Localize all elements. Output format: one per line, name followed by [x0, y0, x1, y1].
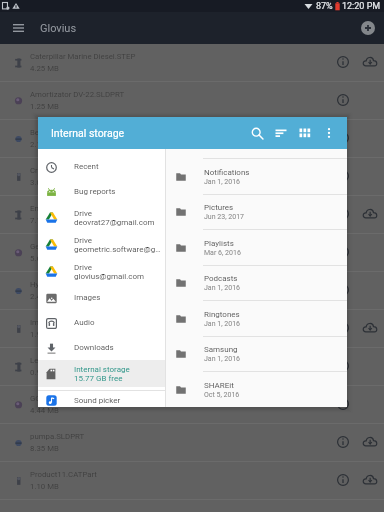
button[interactable]: Internal storage: [38, 360, 165, 387]
staticText: Bearing assembly.STEP: [30, 128, 112, 137]
staticText: Gearbox housing.prt: [30, 242, 101, 251]
button[interactable]: Sound picker: [38, 394, 165, 407]
staticText: Jan 1, 2016: [204, 284, 241, 292]
button[interactable]: Audio: [38, 310, 165, 335]
button[interactable]: File info: [331, 164, 355, 188]
staticText: 1.25 MB: [30, 102, 59, 111]
button[interactable]: Recent: [38, 154, 165, 179]
button[interactable]: File info: [331, 88, 355, 112]
button[interactable]: Pictures: [166, 195, 347, 229]
staticText: Glovius: [40, 22, 77, 35]
button[interactable]: More options: [317, 121, 341, 145]
button[interactable]: Amortizator DV-22.SLDPRT: [0, 82, 384, 119]
staticText: Pictures: [204, 203, 234, 212]
button[interactable]: Search: [245, 121, 269, 145]
button[interactable]: Images: [38, 285, 165, 310]
staticText: Podcasts: [204, 274, 238, 283]
staticText: Amortizator DV-22.SLDPRT: [30, 90, 125, 99]
button[interactable]: Playlists: [166, 230, 347, 265]
button[interactable]: Hydraulic pump.x_t: [0, 272, 384, 309]
staticText: geometric.software@gm...: [74, 245, 165, 254]
staticText: Lever arm.CATPart: [30, 356, 96, 365]
staticText: Audio: [74, 318, 95, 327]
staticText: 87%: [316, 1, 333, 12]
staticText: Product11.CATPart: [30, 470, 97, 479]
button[interactable]: Caterpillar Marine Diesel.STEP: [0, 44, 384, 81]
button[interactable]: File info: [331, 468, 355, 492]
button[interactable]: Notifications: [166, 159, 347, 194]
button[interactable]: Drive: [38, 231, 165, 258]
staticText: Drive: [74, 263, 92, 272]
button[interactable]: File info: [331, 392, 355, 416]
staticText: 12:20 PM: [342, 1, 381, 12]
staticText: 8.35 MB: [30, 444, 59, 453]
button[interactable]: File info: [331, 316, 355, 340]
button[interactable]: Add: [361, 21, 375, 35]
button[interactable]: Download: [358, 50, 382, 74]
staticText: 0.95 MB: [30, 368, 59, 377]
staticText: Caterpillar Marine Diesel.STEP: [30, 52, 136, 61]
staticText: 1.10 MB: [30, 482, 59, 491]
button[interactable]: Sort: [269, 121, 293, 145]
staticText: Jan 1, 2016: [204, 355, 241, 363]
button[interactable]: Download: [358, 316, 382, 340]
staticText: pumpa.SLDPRT: [30, 432, 85, 441]
staticText: GG1a.STEP: [30, 394, 70, 403]
button[interactable]: Downloads: [38, 335, 165, 360]
button[interactable]: Product11.CATPart: [0, 462, 384, 499]
staticText: 1.90 MB: [30, 330, 59, 339]
staticText: deovrat27@gmail.com: [74, 218, 155, 227]
staticText: Engine block.STEP: [30, 204, 95, 213]
button[interactable]: File info: [331, 430, 355, 454]
staticText: Jan 1, 2016: [204, 320, 241, 328]
staticText: Mar 6, 2016: [204, 249, 241, 257]
button[interactable]: pumpa.SLDPRT: [0, 424, 384, 461]
staticText: 15.77 GB free: [74, 374, 123, 383]
button[interactable]: Impeller.SLDPRT: [0, 310, 384, 347]
button[interactable]: File info: [331, 354, 355, 378]
staticText: Internal storage: [51, 127, 125, 139]
staticText: Images: [74, 293, 101, 302]
button[interactable]: Drive: [38, 204, 165, 231]
button[interactable]: Bearing assembly.STEP: [0, 120, 384, 157]
button[interactable]: Grid view: [293, 121, 317, 145]
button[interactable]: Crankshaft.IGS: [0, 158, 384, 195]
button[interactable]: File info: [331, 126, 355, 150]
button[interactable]: Bug reports: [38, 179, 165, 204]
button[interactable]: File info: [331, 50, 355, 74]
staticText: Recent: [74, 162, 99, 171]
button[interactable]: Podcasts: [166, 266, 347, 300]
button[interactable]: Download: [358, 468, 382, 492]
button[interactable]: Open navigation drawer: [7, 17, 29, 39]
staticText: 3.02 MB: [30, 178, 59, 187]
button[interactable]: Gearbox housing.prt: [0, 234, 384, 271]
staticText: 4.25 MB: [30, 64, 59, 73]
button[interactable]: Drive: [38, 258, 165, 285]
staticText: Crankshaft.IGS: [30, 166, 83, 175]
button[interactable]: SHAREit: [166, 372, 347, 407]
button[interactable]: File info: [331, 202, 355, 226]
staticText: Downloads: [74, 343, 114, 352]
staticText: Drive: [74, 209, 92, 218]
staticText: Sound picker: [74, 396, 121, 405]
button[interactable]: Samsung: [166, 337, 347, 371]
button[interactable]: File info: [331, 240, 355, 264]
button[interactable]: Lever arm.CATPart: [0, 348, 384, 385]
staticText: 2.45 MB: [30, 292, 59, 301]
staticText: 7.11 MB: [30, 216, 59, 225]
staticText: Samsung: [204, 345, 238, 354]
button[interactable]: Ringtones: [166, 301, 347, 336]
staticText: Jan 1, 2016: [204, 178, 241, 186]
button[interactable]: Download: [358, 430, 382, 454]
staticText: Bug reports: [74, 187, 116, 196]
staticText: 2.14 MB: [30, 140, 59, 149]
button[interactable]: GG1a.STEP: [0, 386, 384, 423]
staticText: 4.44 MB: [30, 406, 59, 415]
button[interactable]: Engine block.STEP: [0, 196, 384, 233]
staticText: Notifications: [204, 168, 250, 177]
button[interactable]: Download: [358, 202, 382, 226]
staticText: Ringtones: [204, 310, 240, 319]
staticText: Drive: [74, 236, 92, 245]
staticText: Internal storage: [74, 365, 130, 374]
button[interactable]: File info: [331, 278, 355, 302]
